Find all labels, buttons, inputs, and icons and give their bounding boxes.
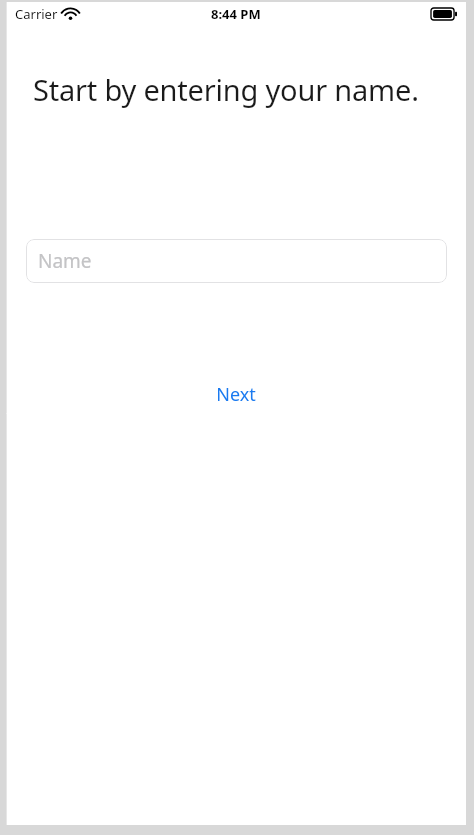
button[interactable]: Next <box>200 376 272 413</box>
staticText: Name <box>38 248 92 274</box>
staticText: Next <box>216 382 256 407</box>
staticText: Carrier <box>15 5 58 23</box>
staticText: 8:44 PM <box>211 5 261 23</box>
button[interactable]: Name <box>26 239 447 283</box>
other: Battery full <box>431 8 457 20</box>
other: Wi-Fi signal <box>63 8 78 20</box>
staticText: Start by entering your name. <box>33 70 452 109</box>
